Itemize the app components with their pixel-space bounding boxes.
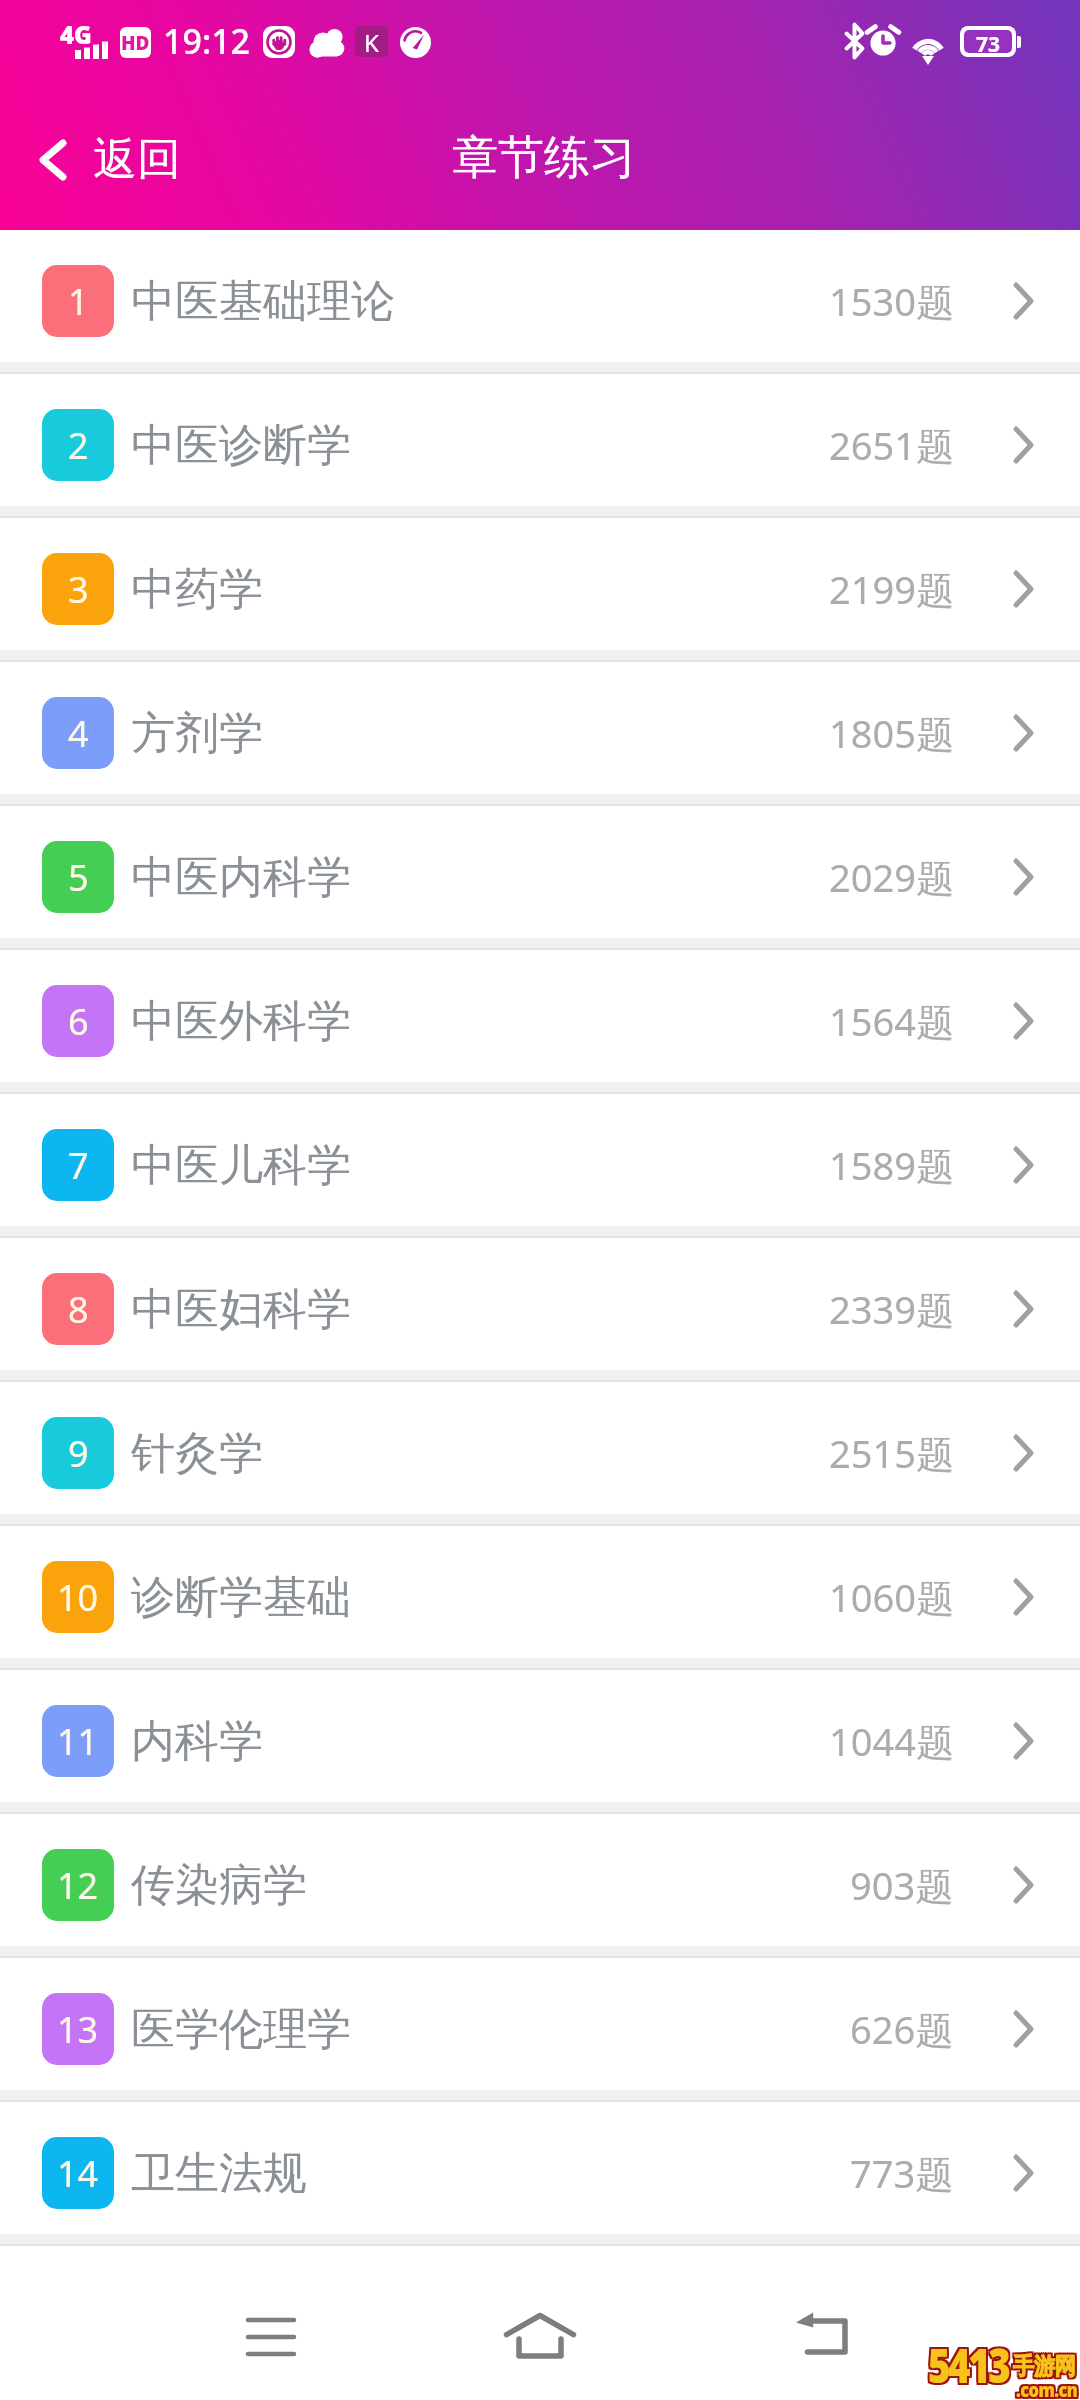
- staticText: 5: [68, 853, 89, 902]
- staticText: 8: [68, 1285, 89, 1334]
- staticText: .com.cn: [1014, 2377, 1076, 2400]
- staticText: .com.cn: [1018, 2377, 1080, 2400]
- staticText: 方剂学: [131, 706, 263, 761]
- staticText: 7: [68, 1141, 89, 1190]
- staticText: 2651题: [829, 419, 954, 471]
- staticText: 内科学: [131, 1714, 263, 1769]
- staticText: 13: [57, 2005, 99, 2054]
- staticText: 11: [57, 1717, 99, 1766]
- staticText: 中医妇科学: [131, 1282, 351, 1337]
- staticText: 中医儿科学: [131, 1138, 351, 1193]
- staticText: 2339题: [829, 1283, 954, 1335]
- button[interactable]: 13: [0, 1963, 1080, 2095]
- staticText: 医学伦理学: [131, 2002, 351, 2057]
- staticText: .com.cn: [1018, 2375, 1080, 2400]
- staticText: .com.cn: [1014, 2379, 1076, 2400]
- staticText: 手游网: [1011, 2350, 1074, 2379]
- staticText: 5413: [926, 2332, 1007, 2397]
- staticText: 5413: [930, 2332, 1011, 2397]
- staticText: 5413: [926, 2334, 1007, 2399]
- button[interactable]: 9: [0, 1387, 1080, 1519]
- button[interactable]: Recent apps: [211, 2282, 331, 2392]
- staticText: 2199题: [829, 563, 954, 615]
- staticText: 1060题: [829, 1571, 954, 1623]
- button[interactable]: 8: [0, 1243, 1080, 1375]
- staticText: 5413: [926, 2330, 1007, 2395]
- staticText: 2515题: [829, 1427, 954, 1479]
- staticText: 诊断学基础: [131, 1570, 351, 1625]
- staticText: K: [364, 26, 379, 57]
- staticText: .com.cn: [1014, 2375, 1076, 2400]
- staticText: 3: [68, 565, 89, 614]
- staticText: 中医基础理论: [131, 274, 395, 329]
- button[interactable]: 11: [0, 1675, 1080, 1807]
- staticText: 2: [68, 421, 89, 470]
- button[interactable]: 7: [0, 1099, 1080, 1231]
- staticText: 1564题: [829, 995, 954, 1047]
- staticText: 中医内科学: [131, 850, 351, 905]
- staticText: 773题: [850, 2147, 954, 2199]
- button[interactable]: 6: [0, 955, 1080, 1087]
- button[interactable]: Home: [480, 2281, 600, 2391]
- staticText: 19:12: [163, 18, 251, 64]
- staticText: 1589题: [829, 1139, 954, 1191]
- staticText: 9: [68, 1429, 89, 1478]
- staticText: 1044题: [829, 1715, 954, 1767]
- button[interactable]: Back: [762, 2278, 882, 2388]
- staticText: 手游网: [1015, 2352, 1078, 2381]
- staticText: 14: [57, 2149, 99, 2198]
- staticText: 903题: [850, 1859, 954, 1911]
- staticText: 6: [68, 997, 89, 1046]
- staticText: 手游网: [1013, 2354, 1076, 2383]
- staticText: 626题: [850, 2003, 954, 2055]
- staticText: 针灸学: [131, 1426, 263, 1481]
- button[interactable]: 3: [0, 523, 1080, 655]
- staticText: 中药学: [131, 562, 263, 617]
- staticText: 手游网: [1015, 2354, 1078, 2383]
- staticText: 中医外科学: [131, 994, 351, 1049]
- staticText: 返回: [93, 132, 181, 187]
- staticText: 手游网: [1011, 2352, 1074, 2381]
- staticText: 4G: [60, 18, 92, 51]
- button[interactable]: 10: [0, 1531, 1080, 1663]
- staticText: 4: [68, 709, 89, 758]
- staticText: 5413: [928, 2332, 1009, 2397]
- button[interactable]: 14: [0, 2107, 1080, 2239]
- staticText: 5413: [930, 2330, 1011, 2395]
- button[interactable]: 1: [0, 235, 1080, 367]
- staticText: 5413: [930, 2334, 1011, 2399]
- button[interactable]: 返回: [0, 112, 205, 207]
- button[interactable]: 5: [0, 811, 1080, 943]
- staticText: .com.cn: [1018, 2379, 1080, 2400]
- staticText: 中医诊断学: [131, 418, 351, 473]
- staticText: 12: [57, 1861, 99, 1910]
- staticText: 手游网: [1013, 2352, 1076, 2381]
- button[interactable]: 12: [0, 1819, 1080, 1951]
- staticText: 手游网: [1011, 2354, 1074, 2383]
- staticText: 1530题: [829, 275, 954, 327]
- staticText: .com.cn: [1016, 2379, 1078, 2400]
- button[interactable]: 2: [0, 379, 1080, 511]
- staticText: .com.cn: [1016, 2375, 1078, 2400]
- staticText: HD: [121, 30, 150, 56]
- staticText: 手游网: [1015, 2350, 1078, 2379]
- staticText: 1: [68, 277, 89, 326]
- staticText: 2029题: [829, 851, 954, 903]
- staticText: 卫生法规: [131, 2146, 307, 2201]
- staticText: 章节练习: [452, 129, 636, 187]
- staticText: 1805题: [829, 707, 954, 759]
- staticText: 手游网: [1013, 2350, 1076, 2379]
- staticText: .com.cn: [1016, 2377, 1078, 2400]
- staticText: 73: [976, 30, 1001, 53]
- staticText: 5413: [928, 2334, 1009, 2399]
- staticText: 传染病学: [131, 1858, 307, 1913]
- staticText: 5413: [928, 2330, 1009, 2395]
- button[interactable]: 4: [0, 667, 1080, 799]
- staticText: 10: [57, 1573, 99, 1622]
